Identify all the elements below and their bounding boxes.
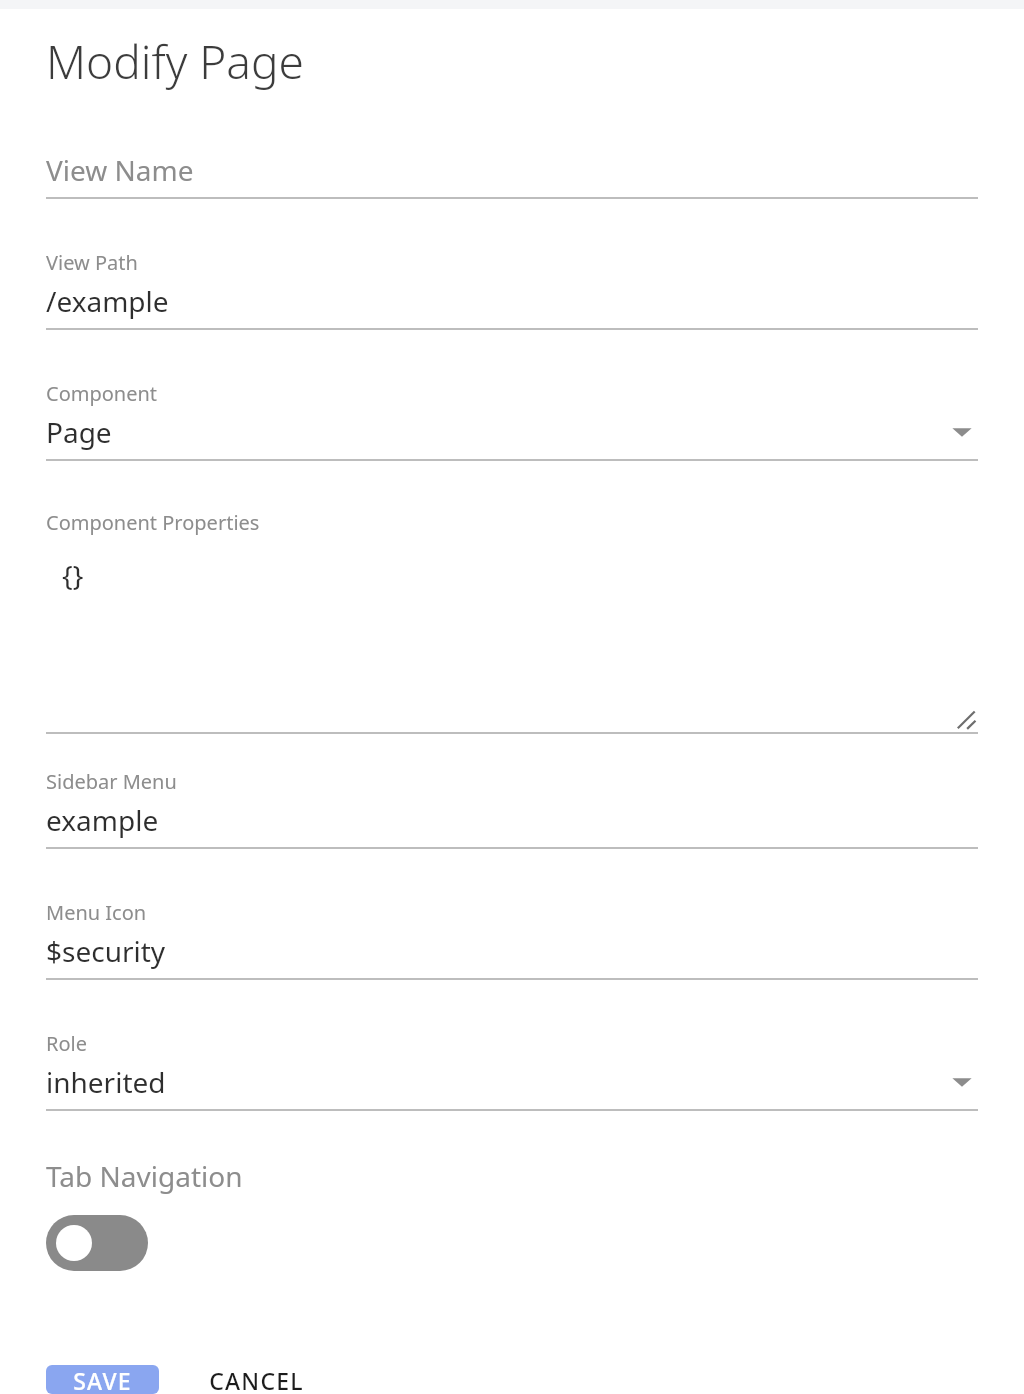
button[interactable]: Sidebar Menu (46, 768, 978, 849)
staticText: $security (46, 932, 166, 970)
staticText: Role (46, 1030, 87, 1057)
button[interactable]: Role (46, 1030, 978, 1111)
staticText: inherited (46, 1063, 166, 1101)
staticText: example (46, 801, 159, 839)
button[interactable]: Component Properties (46, 509, 978, 734)
staticText: {} (62, 556, 84, 594)
staticText: Sidebar Menu (46, 768, 177, 795)
staticText: SAVE (73, 1365, 132, 1394)
staticText: Tab Navigation (46, 1157, 243, 1195)
staticText: View Path (46, 249, 138, 276)
button[interactable]: SAVE (46, 1365, 159, 1394)
staticText: Modify Page (46, 30, 304, 93)
button[interactable]: CANCEL (182, 1365, 331, 1394)
button[interactable]: Component (46, 380, 978, 461)
button[interactable]: Menu Icon (46, 899, 978, 980)
staticText: CANCEL (209, 1365, 304, 1394)
staticText: Menu Icon (46, 899, 147, 926)
staticText: Page (46, 413, 112, 451)
staticText: /example (46, 282, 169, 320)
staticText: Component (46, 380, 158, 407)
staticText: Component Properties (46, 509, 260, 536)
button[interactable]: View Name (46, 151, 978, 199)
button[interactable]: View Path (46, 249, 978, 330)
staticText: View Name (46, 151, 194, 189)
button[interactable]: Tab Navigation toggle, off (46, 1157, 243, 1271)
